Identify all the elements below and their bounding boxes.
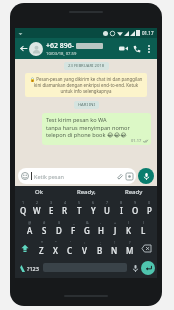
button[interactable]: Ketik pesan [18, 168, 136, 184]
button[interactable]: ! [107, 238, 122, 258]
button[interactable]: More options [143, 43, 154, 54]
staticText: 3 [50, 200, 53, 205]
button[interactable]: ; [92, 238, 107, 258]
staticText: W [33, 205, 41, 216]
staticText: 23 FEBRUARI 2018 [68, 63, 105, 69]
button[interactable]: ?123 [26, 261, 40, 275]
staticText: S [42, 225, 47, 236]
staticText: X [53, 245, 58, 256]
button[interactable]: 5 [72, 198, 86, 218]
staticText: Ok [35, 188, 43, 196]
staticText: * [41, 240, 43, 245]
staticText: Q [20, 205, 27, 216]
staticText: Ketik pesan [34, 173, 64, 180]
button[interactable]: 1 [16, 198, 30, 218]
button[interactable]: * [34, 238, 48, 258]
staticText: V [82, 245, 87, 256]
button[interactable]: ( [122, 218, 136, 238]
button[interactable]: : [77, 238, 92, 258]
button[interactable]: +62 896- [46, 41, 117, 57]
staticText: K [126, 225, 132, 236]
staticText: ; [100, 240, 101, 245]
staticText: - [100, 220, 102, 225]
button[interactable]: Call [130, 42, 143, 55]
button[interactable]: 2 [30, 198, 44, 218]
button[interactable]: Back [18, 43, 29, 54]
button[interactable]: - [94, 218, 108, 238]
staticText: Ready, [77, 188, 96, 196]
staticText: R [62, 205, 68, 216]
button[interactable]: Video call [117, 42, 130, 55]
staticText: ' [70, 240, 71, 245]
staticText: 10/03/18, 07.59 [46, 51, 77, 57]
button[interactable]: Change keyboard [17, 261, 26, 275]
button[interactable]: 6 [86, 198, 100, 218]
button[interactable]: 🔒 Pesan-pesan yang dikirim ke chat ini d… [25, 73, 147, 97]
staticText: + [114, 220, 117, 225]
staticText: Z [39, 245, 44, 256]
button[interactable]: # [37, 218, 52, 238]
staticText: T [77, 205, 82, 216]
staticText: 9 [134, 200, 137, 205]
button[interactable]: ' [62, 238, 77, 258]
staticText: ( [128, 220, 130, 225]
staticText: O [132, 205, 139, 216]
staticText: 6 [92, 200, 95, 205]
staticText: 5 [78, 200, 81, 205]
staticText: ) [143, 220, 145, 225]
staticText: Ready [125, 188, 143, 196]
button[interactable]: 8 [114, 198, 128, 218]
button[interactable]: ? [122, 238, 137, 258]
button[interactable]: Backspace [137, 238, 156, 258]
staticText: C [67, 245, 73, 256]
staticText: ?123 [27, 265, 39, 272]
staticText: +62 896- [46, 41, 75, 51]
staticText: 01.17 [142, 30, 154, 36]
staticText: U [104, 205, 110, 216]
staticText: A [27, 225, 33, 236]
staticText: 4 [64, 200, 67, 205]
button[interactable]: Ok [15, 186, 63, 198]
staticText: I [120, 205, 123, 216]
staticText: Test kirim pesan ko WA tanpa harus menyi… [46, 116, 130, 138]
button[interactable]: 4 [58, 198, 72, 218]
staticText: Y [91, 205, 96, 216]
button[interactable]: _ [66, 218, 80, 238]
staticText: # [43, 220, 46, 225]
staticText: 7 [106, 200, 109, 205]
staticText: ! [114, 240, 115, 245]
button[interactable]: & [80, 218, 94, 238]
staticText: 1 [22, 200, 25, 205]
button[interactable]: ) [136, 218, 150, 238]
staticText: L [141, 225, 146, 236]
staticText: F [71, 225, 76, 236]
button[interactable]: @ [22, 218, 37, 238]
button[interactable]: Shift [16, 238, 34, 258]
staticText: 🔒 Pesan-pesan yang dikirim ke chat ini d… [29, 76, 143, 94]
staticText: H [98, 225, 104, 236]
staticText: & [86, 220, 89, 225]
button[interactable]: Ready [110, 186, 157, 198]
button[interactable]: Voice input [130, 261, 141, 275]
staticText: 0 [148, 200, 151, 205]
button[interactable]: Voice message [138, 168, 154, 184]
staticText: G [84, 225, 90, 236]
staticText: N [111, 245, 118, 256]
button[interactable]: 7 [100, 198, 114, 218]
button[interactable]: $ [52, 218, 66, 238]
button[interactable]: Ready, [63, 186, 110, 198]
button[interactable]: 9 [128, 198, 142, 218]
button[interactable]: + [108, 218, 122, 238]
button[interactable]: Test kirim pesan ko WA tanpa harus menyi… [42, 113, 151, 145]
button[interactable]: 0 [142, 198, 156, 218]
staticText: D [56, 225, 62, 236]
staticText: ? [129, 240, 131, 245]
button[interactable]: Enter [141, 261, 155, 275]
button[interactable]: " [48, 238, 62, 258]
staticText: : [84, 240, 85, 245]
button[interactable]: 3 [44, 198, 58, 218]
staticText: 2 [36, 200, 39, 205]
staticText: @ [28, 220, 32, 225]
staticText: M [126, 245, 134, 256]
